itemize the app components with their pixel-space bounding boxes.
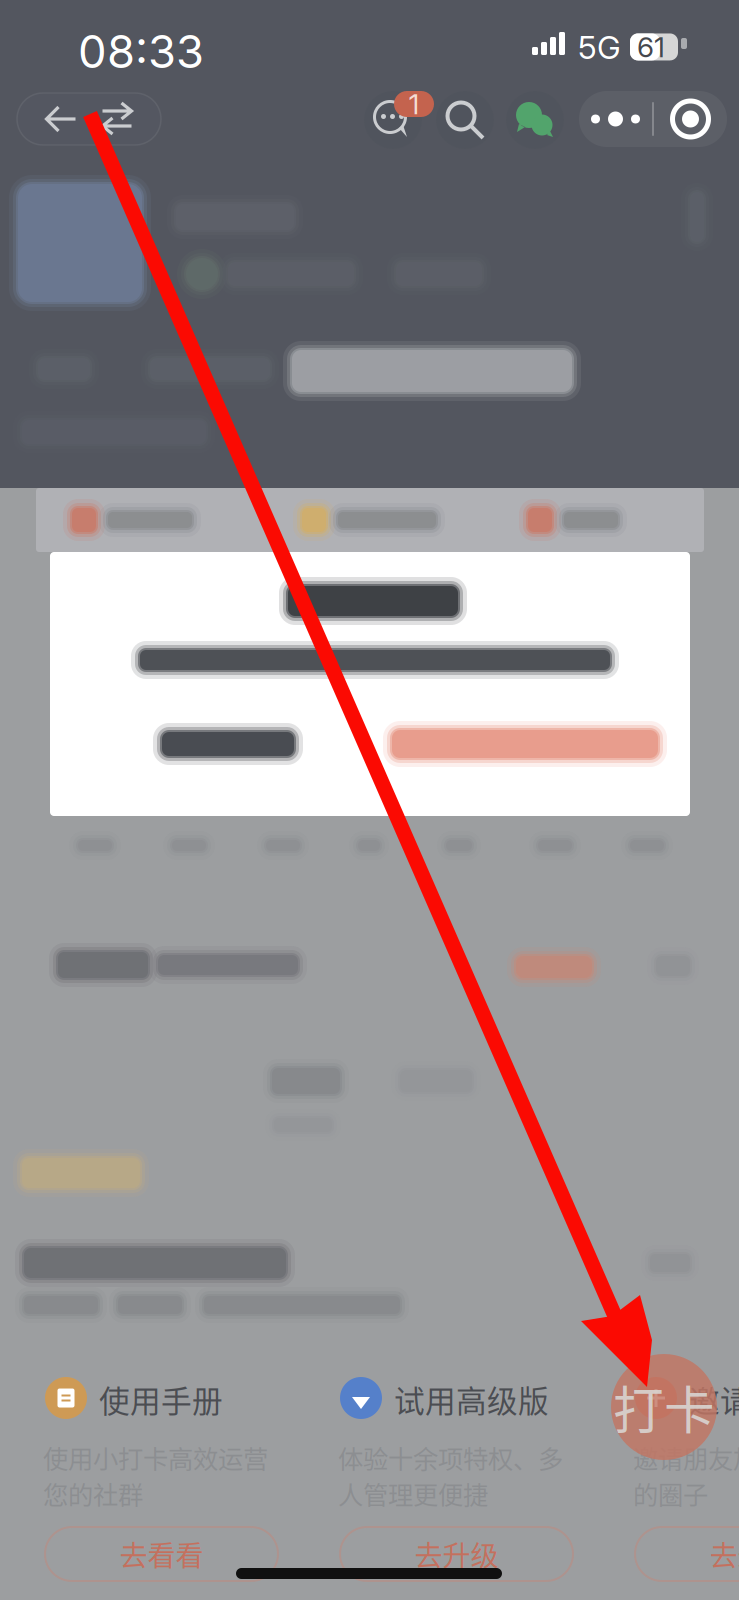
staticText: 试用高级版 xyxy=(394,1377,549,1421)
button[interactable]: 试用高级版 xyxy=(340,1377,595,1597)
staticText: 邀请朋友 xyxy=(689,1377,739,1421)
button[interactable]: Search xyxy=(436,91,494,149)
staticText: 去升级 xyxy=(414,1534,498,1574)
staticText: 使用手册 xyxy=(99,1377,223,1421)
staticText: 5G xyxy=(578,28,621,67)
button[interactable]: WeChat xyxy=(506,91,564,149)
staticText: 的圈子 xyxy=(633,1475,708,1512)
staticText: 去看看 xyxy=(119,1534,203,1574)
staticText: 08:33 xyxy=(78,24,204,79)
staticText: 人管理更便捷 xyxy=(338,1475,488,1512)
button[interactable]: Back xyxy=(17,93,161,145)
staticText: 使用小打卡高效运营 xyxy=(43,1439,268,1476)
staticText: 1 xyxy=(408,87,419,121)
button[interactable]: 使用手册 xyxy=(45,1377,300,1597)
button[interactable]: More xyxy=(579,91,652,147)
staticText: 61 xyxy=(637,30,665,64)
staticText: 邀请朋友加入他人 xyxy=(633,1439,739,1476)
button[interactable]: 邀请朋友 xyxy=(635,1377,739,1597)
staticText: 您的社群 xyxy=(43,1475,143,1512)
button[interactable]: Messages xyxy=(364,91,422,149)
button[interactable]: 打卡 xyxy=(611,1354,717,1460)
staticText: 打卡 xyxy=(613,1370,715,1444)
staticText: 体验十余项特权、多 xyxy=(338,1439,563,1476)
staticText: 去邀请 xyxy=(709,1534,739,1574)
button[interactable]: Close mini program xyxy=(654,91,727,147)
